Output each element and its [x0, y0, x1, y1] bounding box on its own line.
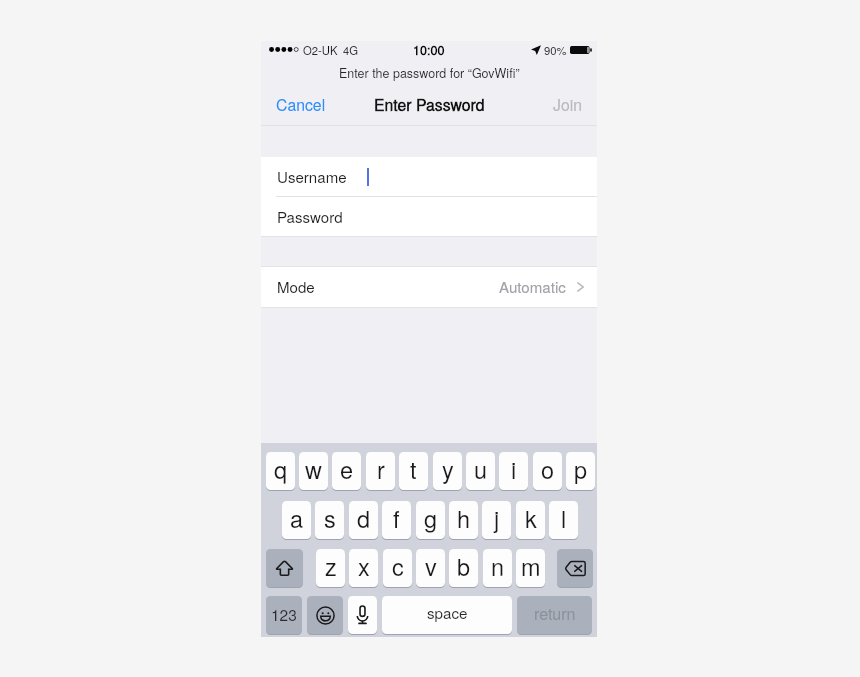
- button[interactable]: Join: [538, 87, 597, 122]
- staticText: O2-UK: [303, 42, 338, 58]
- staticText: y: [442, 452, 454, 486]
- staticText: d: [357, 501, 371, 535]
- button[interactable]: b: [449, 549, 478, 587]
- button[interactable]: s: [315, 501, 344, 539]
- button[interactable]: space: [382, 596, 512, 634]
- staticText: k: [525, 501, 537, 535]
- staticText: 123: [271, 603, 297, 625]
- button[interactable]: Backspace: [557, 549, 593, 587]
- button[interactable]: v: [416, 549, 445, 587]
- staticText: Mode: [277, 276, 315, 298]
- staticText: q: [274, 452, 288, 486]
- staticText: Enter Password: [374, 93, 485, 116]
- button[interactable]: j: [482, 501, 511, 539]
- button[interactable]: Mode: [261, 267, 597, 307]
- staticText: h: [457, 501, 471, 535]
- button[interactable]: o: [533, 452, 562, 490]
- button[interactable]: Emoji: [307, 596, 343, 634]
- button[interactable]: return: [517, 596, 592, 634]
- staticText: 10:00: [413, 41, 445, 59]
- button[interactable]: Dictation: [348, 596, 377, 634]
- button[interactable]: c: [383, 549, 412, 587]
- staticText: Username: [277, 166, 347, 188]
- button[interactable]: y: [433, 452, 462, 490]
- button[interactable]: d: [349, 501, 378, 539]
- staticText: c: [392, 549, 404, 583]
- staticText: e: [340, 452, 354, 486]
- button[interactable]: e: [332, 452, 361, 490]
- staticText: a: [290, 501, 304, 535]
- staticText: s: [324, 501, 336, 535]
- staticText: m: [521, 549, 541, 583]
- button[interactable]: f: [382, 501, 411, 539]
- staticText: g: [424, 501, 438, 535]
- button[interactable]: z: [316, 549, 345, 587]
- staticText: space: [427, 602, 468, 624]
- staticText: Password: [277, 206, 343, 228]
- button[interactable]: g: [416, 501, 445, 539]
- staticText: p: [574, 452, 588, 486]
- button[interactable]: p: [566, 452, 595, 490]
- button[interactable]: q: [266, 452, 295, 490]
- staticText: x: [358, 549, 370, 583]
- staticText: o: [541, 452, 555, 486]
- staticText: w: [305, 452, 322, 486]
- button[interactable]: m: [516, 549, 545, 587]
- staticText: Enter the password for “GovWifi”: [339, 64, 520, 82]
- staticText: r: [377, 452, 385, 486]
- staticText: v: [425, 549, 437, 583]
- button[interactable]: n: [483, 549, 512, 587]
- staticText: 4G: [343, 42, 359, 58]
- button[interactable]: Shift: [266, 549, 303, 587]
- button[interactable]: k: [516, 501, 545, 539]
- staticText: z: [325, 549, 337, 583]
- button[interactable]: l: [549, 501, 578, 539]
- staticText: i: [511, 452, 517, 486]
- button[interactable]: u: [466, 452, 495, 490]
- staticText: u: [474, 452, 488, 486]
- staticText: Cancel: [276, 93, 326, 116]
- button[interactable]: h: [449, 501, 478, 539]
- staticText: b: [457, 549, 471, 583]
- button[interactable]: w: [299, 452, 328, 490]
- button[interactable]: Password: [261, 197, 597, 236]
- button[interactable]: x: [349, 549, 378, 587]
- staticText: n: [491, 549, 505, 583]
- button[interactable]: Cancel: [261, 87, 341, 122]
- staticText: f: [393, 501, 400, 535]
- staticText: Join: [553, 93, 582, 116]
- staticText: j: [494, 501, 500, 535]
- button[interactable]: r: [366, 452, 395, 490]
- button[interactable]: Username: [261, 157, 597, 196]
- button[interactable]: a: [282, 501, 311, 539]
- staticText: Automatic: [499, 276, 566, 298]
- button[interactable]: i: [499, 452, 528, 490]
- staticText: l: [561, 501, 567, 535]
- staticText: t: [410, 452, 417, 486]
- button[interactable]: 123: [266, 596, 302, 634]
- staticText: return: [534, 602, 576, 625]
- staticText: 90%: [544, 42, 567, 58]
- button[interactable]: t: [399, 452, 428, 490]
